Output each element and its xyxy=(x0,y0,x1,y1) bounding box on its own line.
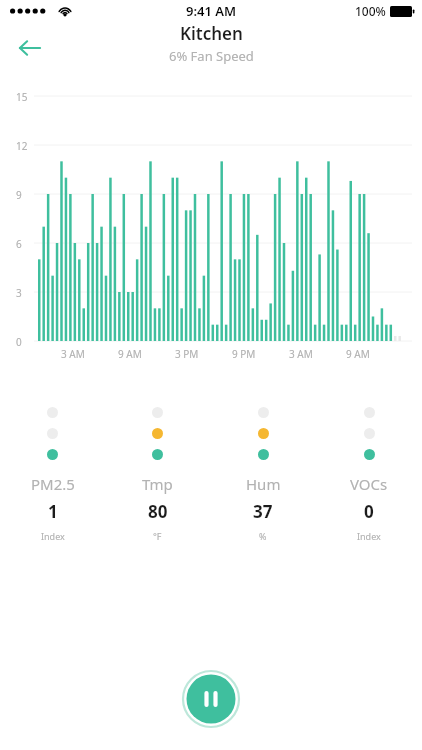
button[interactable]: PM2.5 xyxy=(0,407,105,542)
staticText: 6 xyxy=(16,237,22,251)
staticText: 1 xyxy=(48,500,58,523)
staticText: 9 xyxy=(16,188,22,202)
staticText: 3 AM xyxy=(289,347,313,361)
staticText: 3 AM xyxy=(61,347,85,361)
staticText: °F xyxy=(153,530,162,542)
button[interactable]: Pause xyxy=(182,670,240,728)
staticText: 9 AM xyxy=(346,347,370,361)
staticText: 37 xyxy=(253,500,273,523)
staticText: 3 xyxy=(16,286,22,300)
button[interactable]: VOCs xyxy=(316,407,422,542)
staticText: Index xyxy=(41,530,65,542)
button[interactable]: Tmp xyxy=(105,407,210,542)
staticText: 15 xyxy=(16,90,28,104)
staticText: 6% Fan Speed xyxy=(169,47,254,65)
staticText: Index xyxy=(357,530,381,542)
staticText: 9 AM xyxy=(118,347,142,361)
button[interactable]: Back xyxy=(8,26,52,70)
staticText: Hum xyxy=(246,474,281,494)
staticText: 9 PM xyxy=(232,347,256,361)
staticText: 80 xyxy=(148,500,168,523)
staticText: 0 xyxy=(16,335,22,349)
staticText: 100% xyxy=(355,3,386,19)
staticText: % xyxy=(259,530,267,542)
staticText: 3 PM xyxy=(175,347,199,361)
staticText: Kitchen xyxy=(180,22,243,45)
button[interactable]: Hum xyxy=(210,407,316,542)
staticText: 9:41 AM xyxy=(186,2,237,20)
staticText: 0 xyxy=(364,500,374,523)
staticText: VOCs xyxy=(350,474,388,494)
staticText: Tmp xyxy=(142,474,173,494)
staticText: PM2.5 xyxy=(31,474,75,494)
staticText: 12 xyxy=(16,139,28,153)
